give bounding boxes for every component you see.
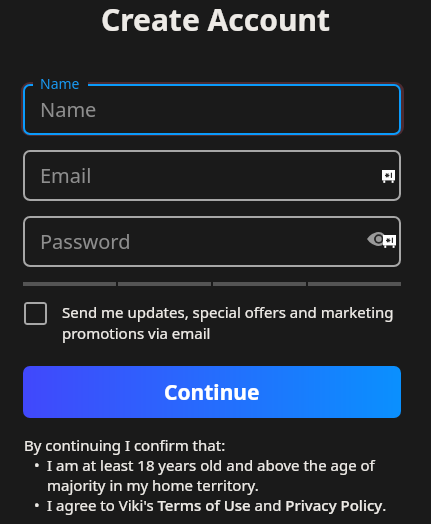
- button[interactable]: Name: [23, 84, 401, 135]
- button[interactable]: Email: [23, 150, 401, 201]
- staticText: Name: [40, 96, 97, 123]
- staticText: Create Account: [0, 0, 431, 40]
- staticText: By continuing I confirm that:: [24, 435, 226, 455]
- staticText: Email: [40, 162, 92, 189]
- other: Autofill: [383, 235, 396, 248]
- staticText: Send me updates, special offers and mark…: [62, 302, 396, 344]
- staticText: •: [34, 455, 40, 475]
- staticText: •: [34, 495, 40, 515]
- button[interactable]: Send me updates, special offers and mark…: [24, 302, 396, 344]
- button[interactable]: Continue: [23, 366, 401, 418]
- staticText: I agree to Viki's Terms of Use and Priva…: [47, 495, 387, 515]
- staticText: Name: [40, 74, 80, 90]
- staticText: Continue: [164, 378, 260, 407]
- staticText: I am at least 18 years old and above the…: [47, 455, 424, 495]
- other: Autofill: [382, 170, 395, 183]
- staticText: Password: [40, 228, 131, 255]
- button[interactable]: Password: [23, 216, 401, 267]
- other: Show password: [367, 232, 386, 246]
